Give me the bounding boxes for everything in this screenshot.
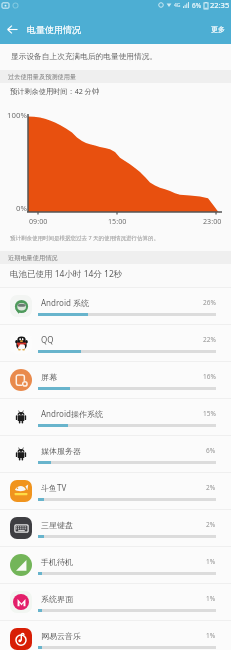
button[interactable]: Back [0, 14, 24, 44]
staticText: 更多 [211, 25, 225, 34]
staticText: 26% [203, 298, 216, 307]
staticText: 电池已使用 14小时 14分 12秒 [10, 268, 123, 280]
staticText: 媒体服务器 [41, 446, 81, 456]
staticText: 15:00 [108, 216, 127, 226]
staticText: 预计剩余使用时间是根据您过去 7 天的使用情况进行估算的。 [10, 234, 160, 242]
button[interactable]: 屏幕 [0, 361, 231, 398]
staticText: 100% [7, 110, 27, 121]
staticText: 手机待机 [41, 557, 73, 567]
staticText: 1% [206, 594, 216, 603]
staticText: Android操作系统 [41, 408, 103, 419]
staticText: 三星键盘 [41, 520, 73, 530]
button[interactable]: 斗鱼TV [0, 472, 231, 509]
staticText: 斗鱼TV [41, 482, 67, 493]
staticText: Android 系统 [41, 297, 90, 308]
staticText: 2% [206, 483, 216, 492]
staticText: QQ [41, 334, 54, 345]
staticText: 2% [206, 520, 216, 529]
staticText: 09:00 [29, 216, 48, 226]
staticText: 6% [206, 446, 216, 455]
button[interactable]: Android操作系统 [0, 398, 231, 435]
button[interactable]: 更多 [205, 14, 231, 44]
staticText: 过去使用量及预测使用量 [8, 73, 77, 81]
button[interactable]: 网易云音乐 [0, 620, 231, 650]
staticText: 近期电量使用情况 [8, 254, 58, 262]
staticText: 1% [206, 631, 216, 640]
button[interactable]: 媒体服务器 [0, 435, 231, 472]
staticText: 0% [16, 203, 27, 214]
staticText: 22:35 [210, 0, 230, 10]
staticText: 16% [203, 372, 216, 381]
staticText: 6% [192, 1, 202, 10]
button[interactable]: Android 系统 [0, 287, 231, 324]
staticText: 显示设备自上次充满电后的电量使用情况。 [11, 52, 158, 62]
staticText: 1% [206, 557, 216, 566]
button[interactable]: 系统界面 [0, 583, 231, 620]
button[interactable]: 手机待机 [0, 546, 231, 583]
staticText: 22% [203, 335, 216, 344]
staticText: 15% [203, 409, 216, 418]
staticText: 网易云音乐 [41, 631, 81, 641]
staticText: 预计剩余使用时间：42 分钟 [10, 86, 100, 96]
button[interactable]: 三星键盘 [0, 509, 231, 546]
staticText: 电量使用情况 [27, 24, 81, 35]
staticText: 系统界面 [41, 594, 73, 604]
button[interactable]: QQ [0, 324, 231, 361]
staticText: 4G [174, 2, 181, 9]
staticText: 屏幕 [41, 372, 57, 382]
staticText: 23:00 [203, 216, 222, 226]
